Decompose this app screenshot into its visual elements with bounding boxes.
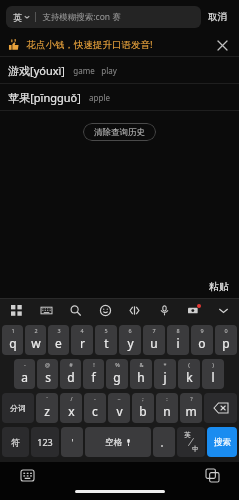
button[interactable]: 。 — [153, 427, 175, 457]
button[interactable]: Recent apps — [203, 466, 221, 484]
staticText: 7 — [152, 327, 156, 334]
button[interactable]: - — [84, 393, 106, 423]
button[interactable]: Keyboard switcher — [18, 466, 36, 484]
button[interactable]: 苹果[pīngguǒ] — [0, 84, 239, 110]
staticText: : — [166, 395, 168, 402]
staticText: 123 — [37, 436, 53, 448]
staticText: ` — [46, 395, 48, 402]
button[interactable]: 0 — [215, 325, 237, 355]
button[interactable]: 符 — [2, 427, 29, 457]
button[interactable]: Keyboard — [36, 300, 56, 320]
staticText: t — [104, 335, 109, 351]
button[interactable]: 游戏[yóuxì] — [0, 57, 239, 83]
button[interactable]: ' — [61, 427, 83, 457]
staticText: c — [92, 403, 98, 419]
button[interactable]: ; — [132, 393, 154, 423]
button[interactable]: 分词 — [2, 393, 34, 423]
button[interactable]: ? — [180, 393, 202, 423]
button[interactable]: 空格 — [85, 427, 151, 457]
staticText: ) — [212, 361, 214, 368]
staticText: play — [101, 65, 117, 76]
staticText: 1 — [11, 327, 15, 334]
staticText: 英 — [13, 12, 22, 23]
staticText: ; — [142, 395, 144, 402]
staticText: 6 — [128, 327, 132, 334]
staticText: 取消 — [208, 11, 227, 23]
button[interactable]: 4 — [71, 325, 93, 355]
staticText: 9 — [200, 327, 204, 334]
button[interactable]: Code input — [124, 300, 144, 320]
button[interactable]: ` — [36, 393, 58, 423]
staticText: x — [68, 403, 75, 419]
button[interactable]: Emoji — [95, 300, 115, 320]
button[interactable]: * — [154, 359, 176, 389]
staticText: apple — [89, 92, 110, 103]
button[interactable]: ~ — [108, 393, 130, 423]
staticText: 苹果[pīngguǒ] — [8, 90, 81, 105]
staticText: 搜索 — [214, 437, 231, 448]
button[interactable]: 1 — [2, 325, 23, 355]
button[interactable]: Apps — [6, 300, 26, 320]
button[interactable]: Close banner — [213, 36, 231, 54]
staticText: d — [67, 369, 75, 385]
button[interactable]: # — [60, 359, 81, 389]
button[interactable]: 123 — [31, 427, 59, 457]
button[interactable]: @ — [37, 359, 58, 389]
staticText: 分词 — [10, 403, 26, 413]
button[interactable]: 6 — [119, 325, 141, 355]
staticText: n — [163, 403, 171, 419]
staticText: u — [150, 335, 158, 351]
staticText: % — [115, 361, 120, 368]
button[interactable]: ! — [83, 359, 104, 389]
button[interactable]: 9 — [191, 325, 213, 355]
staticText: g — [113, 369, 121, 385]
staticText: & — [139, 361, 144, 368]
button[interactable]: 英 — [6, 6, 201, 28]
staticText: 中 — [192, 445, 199, 453]
staticText: 游戏[yóuxì] — [8, 63, 65, 78]
button[interactable]: Search — [65, 300, 85, 320]
staticText: e — [55, 335, 62, 351]
staticText: s — [45, 369, 51, 385]
button[interactable]: & — [130, 359, 152, 389]
button[interactable]: 7 — [143, 325, 165, 355]
button[interactable]: : — [156, 393, 178, 423]
staticText: 支持模糊搜索:con 赛 — [42, 11, 121, 23]
staticText: j — [163, 369, 167, 385]
staticText: h — [137, 369, 145, 385]
button[interactable]: Switch English Chinese — [177, 427, 205, 457]
staticText: ( — [188, 361, 190, 368]
button[interactable]: Camera input — [183, 300, 203, 320]
button[interactable]: 清除查询历史 — [83, 123, 156, 141]
button[interactable]: 8 — [167, 325, 189, 355]
button[interactable]: Backspace — [204, 393, 237, 423]
button[interactable]: - — [14, 359, 35, 389]
button[interactable]: Voice input — [154, 300, 174, 320]
staticText: m — [185, 403, 197, 419]
button[interactable]: 花点小钱，快速提升口语发音! — [0, 33, 239, 56]
button[interactable]: % — [106, 359, 128, 389]
button[interactable]: ( — [178, 359, 200, 389]
staticText: ~ — [117, 395, 121, 402]
button[interactable]: 3 — [48, 325, 69, 355]
staticText: 2 — [34, 327, 38, 334]
button[interactable]: 5 — [95, 325, 117, 355]
button[interactable]: 取消 — [201, 5, 233, 29]
staticText: 英 — [184, 431, 191, 439]
button[interactable]: 粘贴 — [199, 274, 239, 298]
staticText: 0 — [224, 327, 228, 334]
staticText: y — [127, 335, 134, 351]
button[interactable]: / — [60, 393, 82, 423]
staticText: / — [70, 395, 73, 402]
staticText: ' — [71, 436, 74, 448]
staticText: @ — [45, 361, 50, 368]
button[interactable]: 搜索 — [207, 427, 237, 457]
button[interactable]: 2 — [25, 325, 46, 355]
staticText: 3 — [57, 327, 61, 334]
staticText: 。 — [160, 437, 169, 448]
button[interactable]: ) — [202, 359, 224, 389]
staticText: f — [91, 369, 96, 385]
button[interactable]: Hide keyboard — [213, 300, 233, 320]
staticText: 花点小钱，快速提升口语发音! — [26, 38, 153, 51]
staticText: r — [80, 335, 85, 351]
